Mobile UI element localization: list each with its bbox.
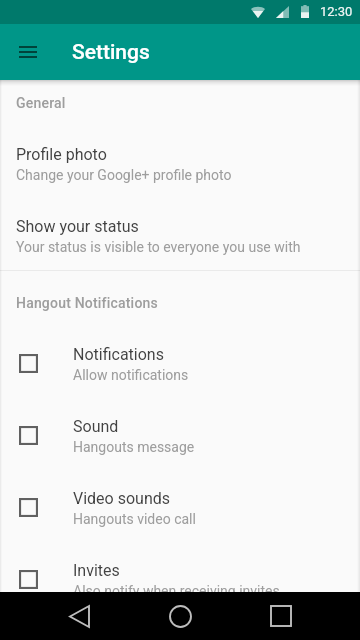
staticText: Allow notifications bbox=[73, 367, 189, 383]
button[interactable]: Recent apps bbox=[257, 592, 305, 640]
staticText: Video sounds bbox=[73, 489, 170, 508]
button[interactable]: Sound bbox=[0, 400, 360, 472]
button[interactable]: Profile photo bbox=[0, 128, 360, 200]
staticText: Sound bbox=[73, 417, 119, 436]
staticText: Hangout Notifications bbox=[16, 295, 158, 311]
button[interactable]: Video sounds bbox=[0, 472, 360, 544]
staticText: 12:30 bbox=[320, 4, 353, 19]
staticText: Also notify when receiving invites bbox=[73, 583, 280, 599]
staticText: Change your Google+ profile photo bbox=[16, 167, 232, 183]
staticText: Show your status bbox=[16, 217, 139, 236]
button[interactable]: Invites bbox=[0, 544, 360, 616]
button[interactable]: Navigation menu bbox=[4, 28, 52, 76]
staticText: Your status is visible to everyone you u… bbox=[16, 239, 301, 255]
staticText: Hangouts message bbox=[73, 439, 195, 455]
staticText: Hangouts video call bbox=[73, 511, 196, 527]
staticText: Profile photo bbox=[16, 145, 107, 164]
staticText: Invites bbox=[73, 561, 120, 580]
staticText: Notifications bbox=[73, 345, 164, 364]
button[interactable]: Back bbox=[55, 592, 103, 640]
staticText: General bbox=[16, 95, 66, 111]
button[interactable]: Notifications bbox=[0, 328, 360, 400]
button[interactable]: Show your status bbox=[0, 200, 360, 270]
staticText: Settings bbox=[72, 40, 150, 65]
button[interactable]: Home bbox=[156, 592, 204, 640]
